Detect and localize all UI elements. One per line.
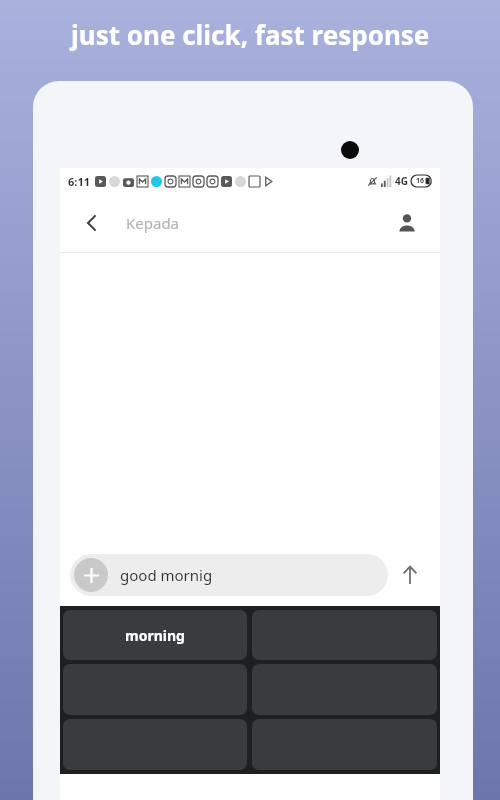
staticText: good mornig bbox=[120, 565, 213, 585]
staticText: 4G bbox=[395, 174, 408, 188]
button[interactable]: Send bbox=[388, 553, 432, 597]
staticText: Kepada bbox=[126, 213, 180, 233]
button[interactable]: Add bbox=[74, 558, 108, 592]
staticText: morning bbox=[125, 626, 185, 645]
button[interactable]: Add bbox=[70, 554, 388, 596]
staticText: 6:11 bbox=[68, 174, 90, 189]
button[interactable]: Contact bbox=[388, 204, 426, 242]
staticText: just one click, fast response bbox=[71, 17, 430, 52]
button[interactable]: Back bbox=[74, 205, 110, 241]
staticText: 16 bbox=[416, 176, 425, 186]
button[interactable]: morning bbox=[63, 610, 247, 660]
